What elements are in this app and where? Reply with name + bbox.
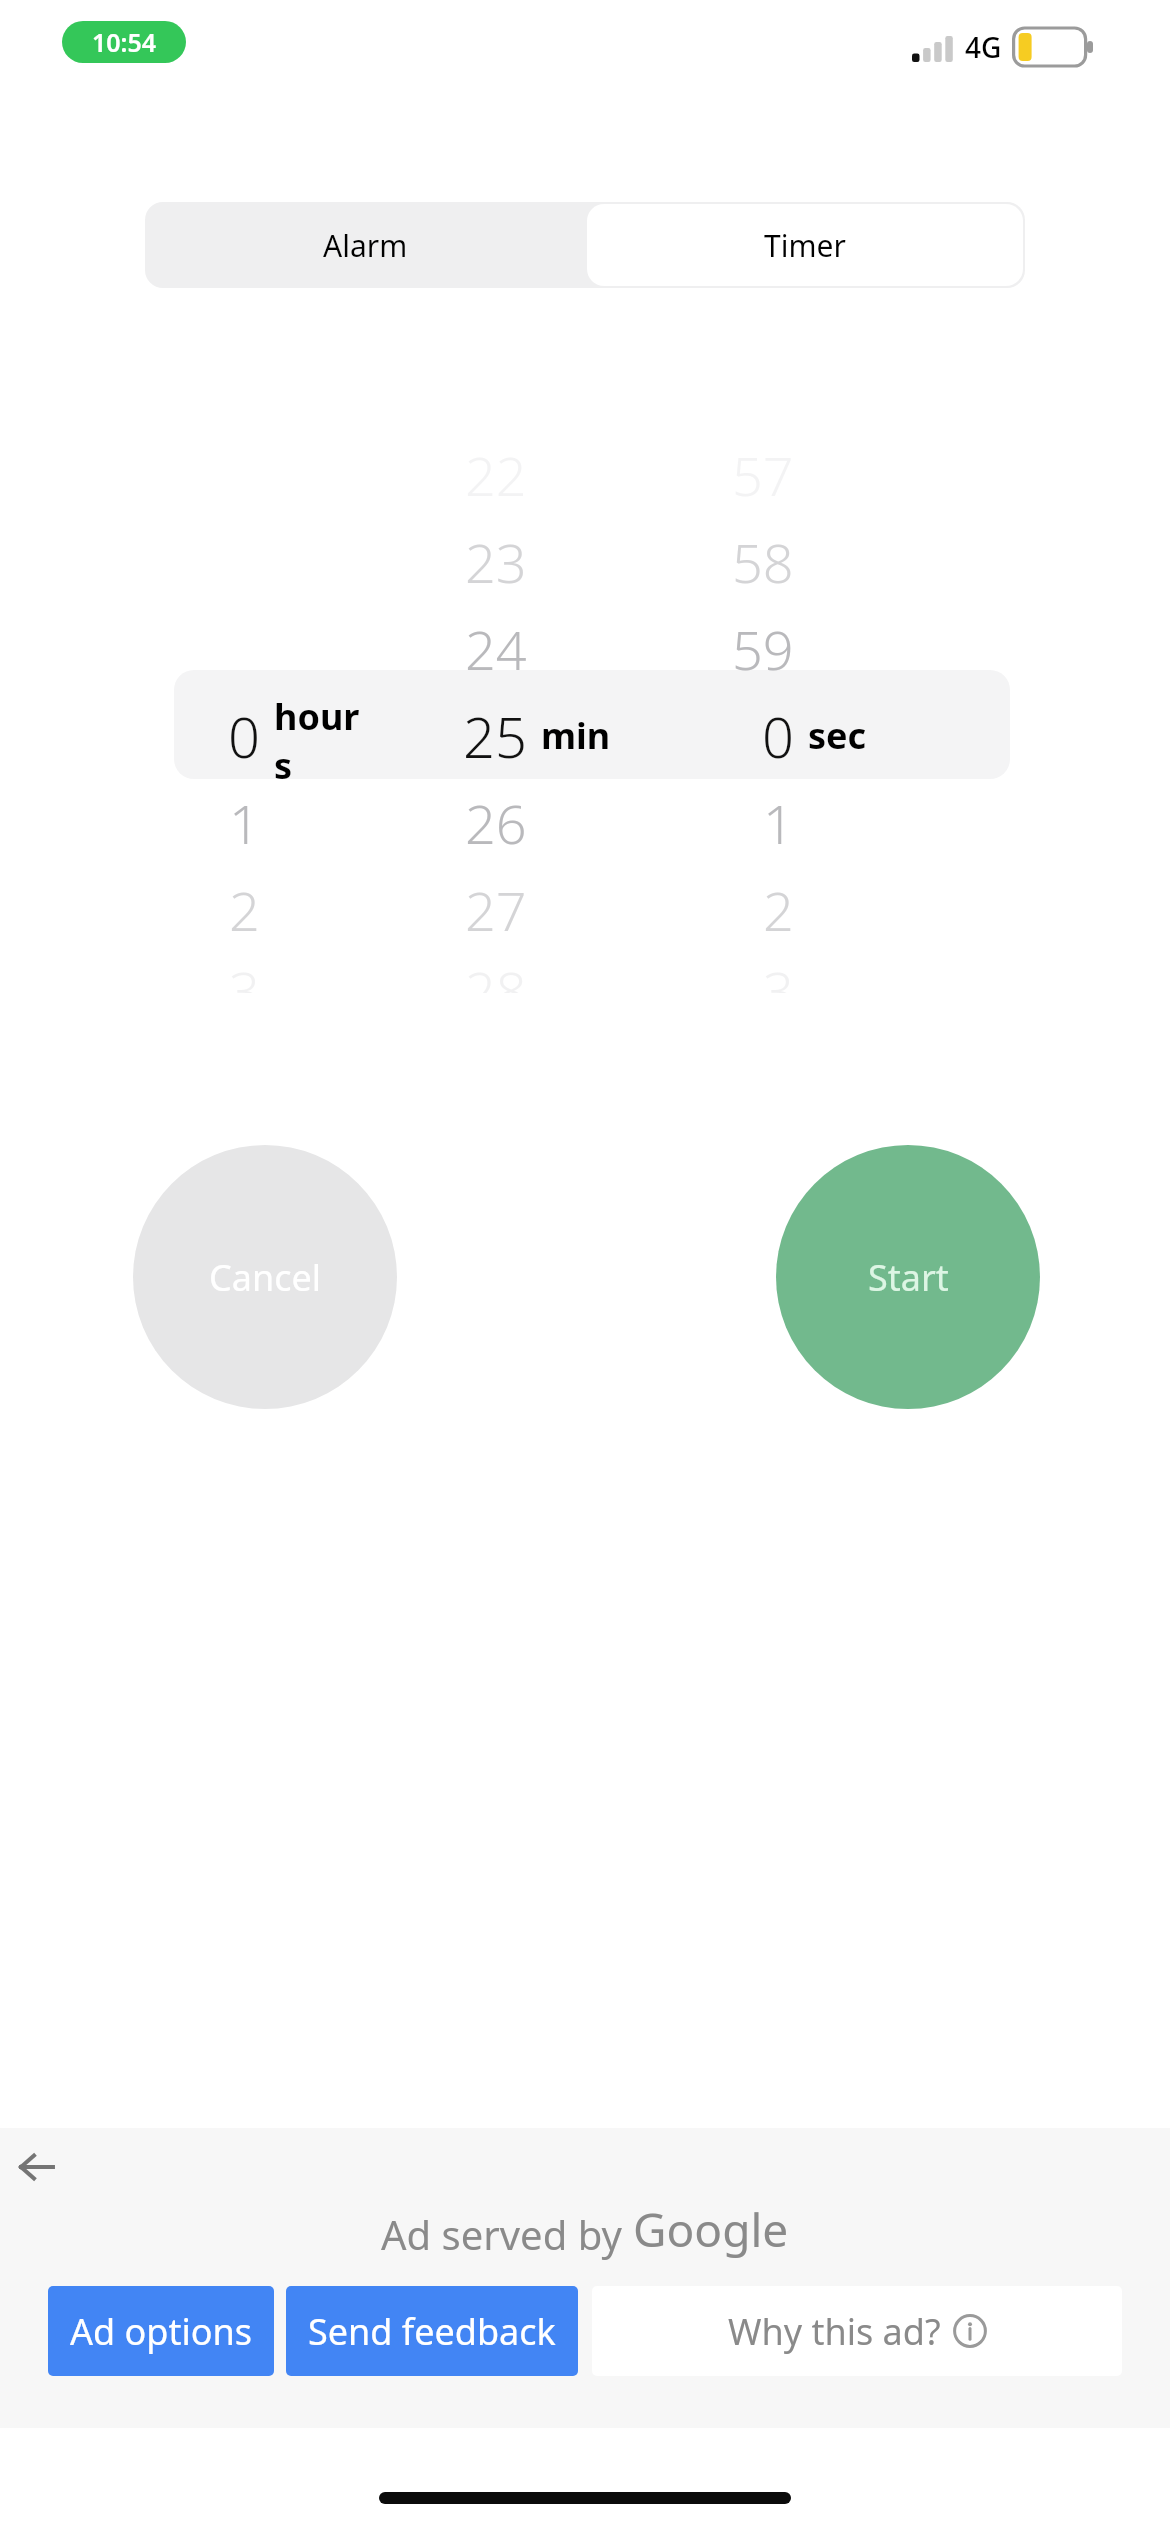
staticText: Timer: [764, 225, 846, 266]
staticText: Alarm: [323, 225, 408, 266]
staticText: Ad served by: [381, 2207, 633, 2261]
button[interactable]: Start: [776, 1145, 1040, 1409]
button[interactable]: 0: [105, 431, 362, 993]
button[interactable]: Why this ad?: [592, 2286, 1122, 2376]
staticText: 3: [229, 953, 260, 993]
button[interactable]: 22: [362, 431, 634, 993]
staticText: 26: [465, 786, 527, 860]
staticText: 57: [732, 438, 794, 512]
staticText: Cancel: [209, 1253, 322, 1302]
staticText: 23: [465, 525, 527, 599]
button[interactable]: Cancel: [133, 1145, 397, 1409]
button[interactable]: Back: [8, 2138, 66, 2196]
staticText: 1: [763, 786, 794, 860]
staticText: Ad options: [70, 2307, 252, 2356]
staticText: 28: [465, 953, 527, 993]
button[interactable]: Ad options: [48, 2286, 274, 2376]
staticText: 2: [763, 873, 794, 947]
staticText: 27: [465, 873, 527, 947]
staticText: 4G: [965, 28, 1002, 66]
staticText: 24: [465, 612, 527, 686]
staticText: 58: [732, 525, 794, 599]
staticText: 1: [229, 786, 260, 860]
staticText: 25: [463, 698, 527, 774]
staticText: 2: [229, 873, 260, 947]
button[interactable]: Timer: [587, 204, 1023, 286]
button[interactable]: 57: [634, 431, 906, 993]
button[interactable]: Send feedback: [286, 2286, 578, 2376]
staticText: Send feedback: [308, 2307, 556, 2356]
staticText: 0: [762, 698, 794, 774]
staticText: 3: [763, 953, 794, 993]
staticText: 10:54: [92, 25, 157, 59]
staticText: Why this ad?: [728, 2307, 941, 2356]
staticText: Start: [868, 1253, 949, 1302]
staticText: 59: [732, 612, 794, 686]
staticText: 22: [465, 438, 527, 512]
staticText: 0: [228, 698, 260, 774]
button[interactable]: Alarm: [145, 202, 585, 288]
staticText: min: [541, 711, 611, 760]
staticText: Google: [633, 2198, 789, 2261]
staticText: sec: [808, 711, 867, 760]
staticText: hours: [274, 692, 362, 779]
